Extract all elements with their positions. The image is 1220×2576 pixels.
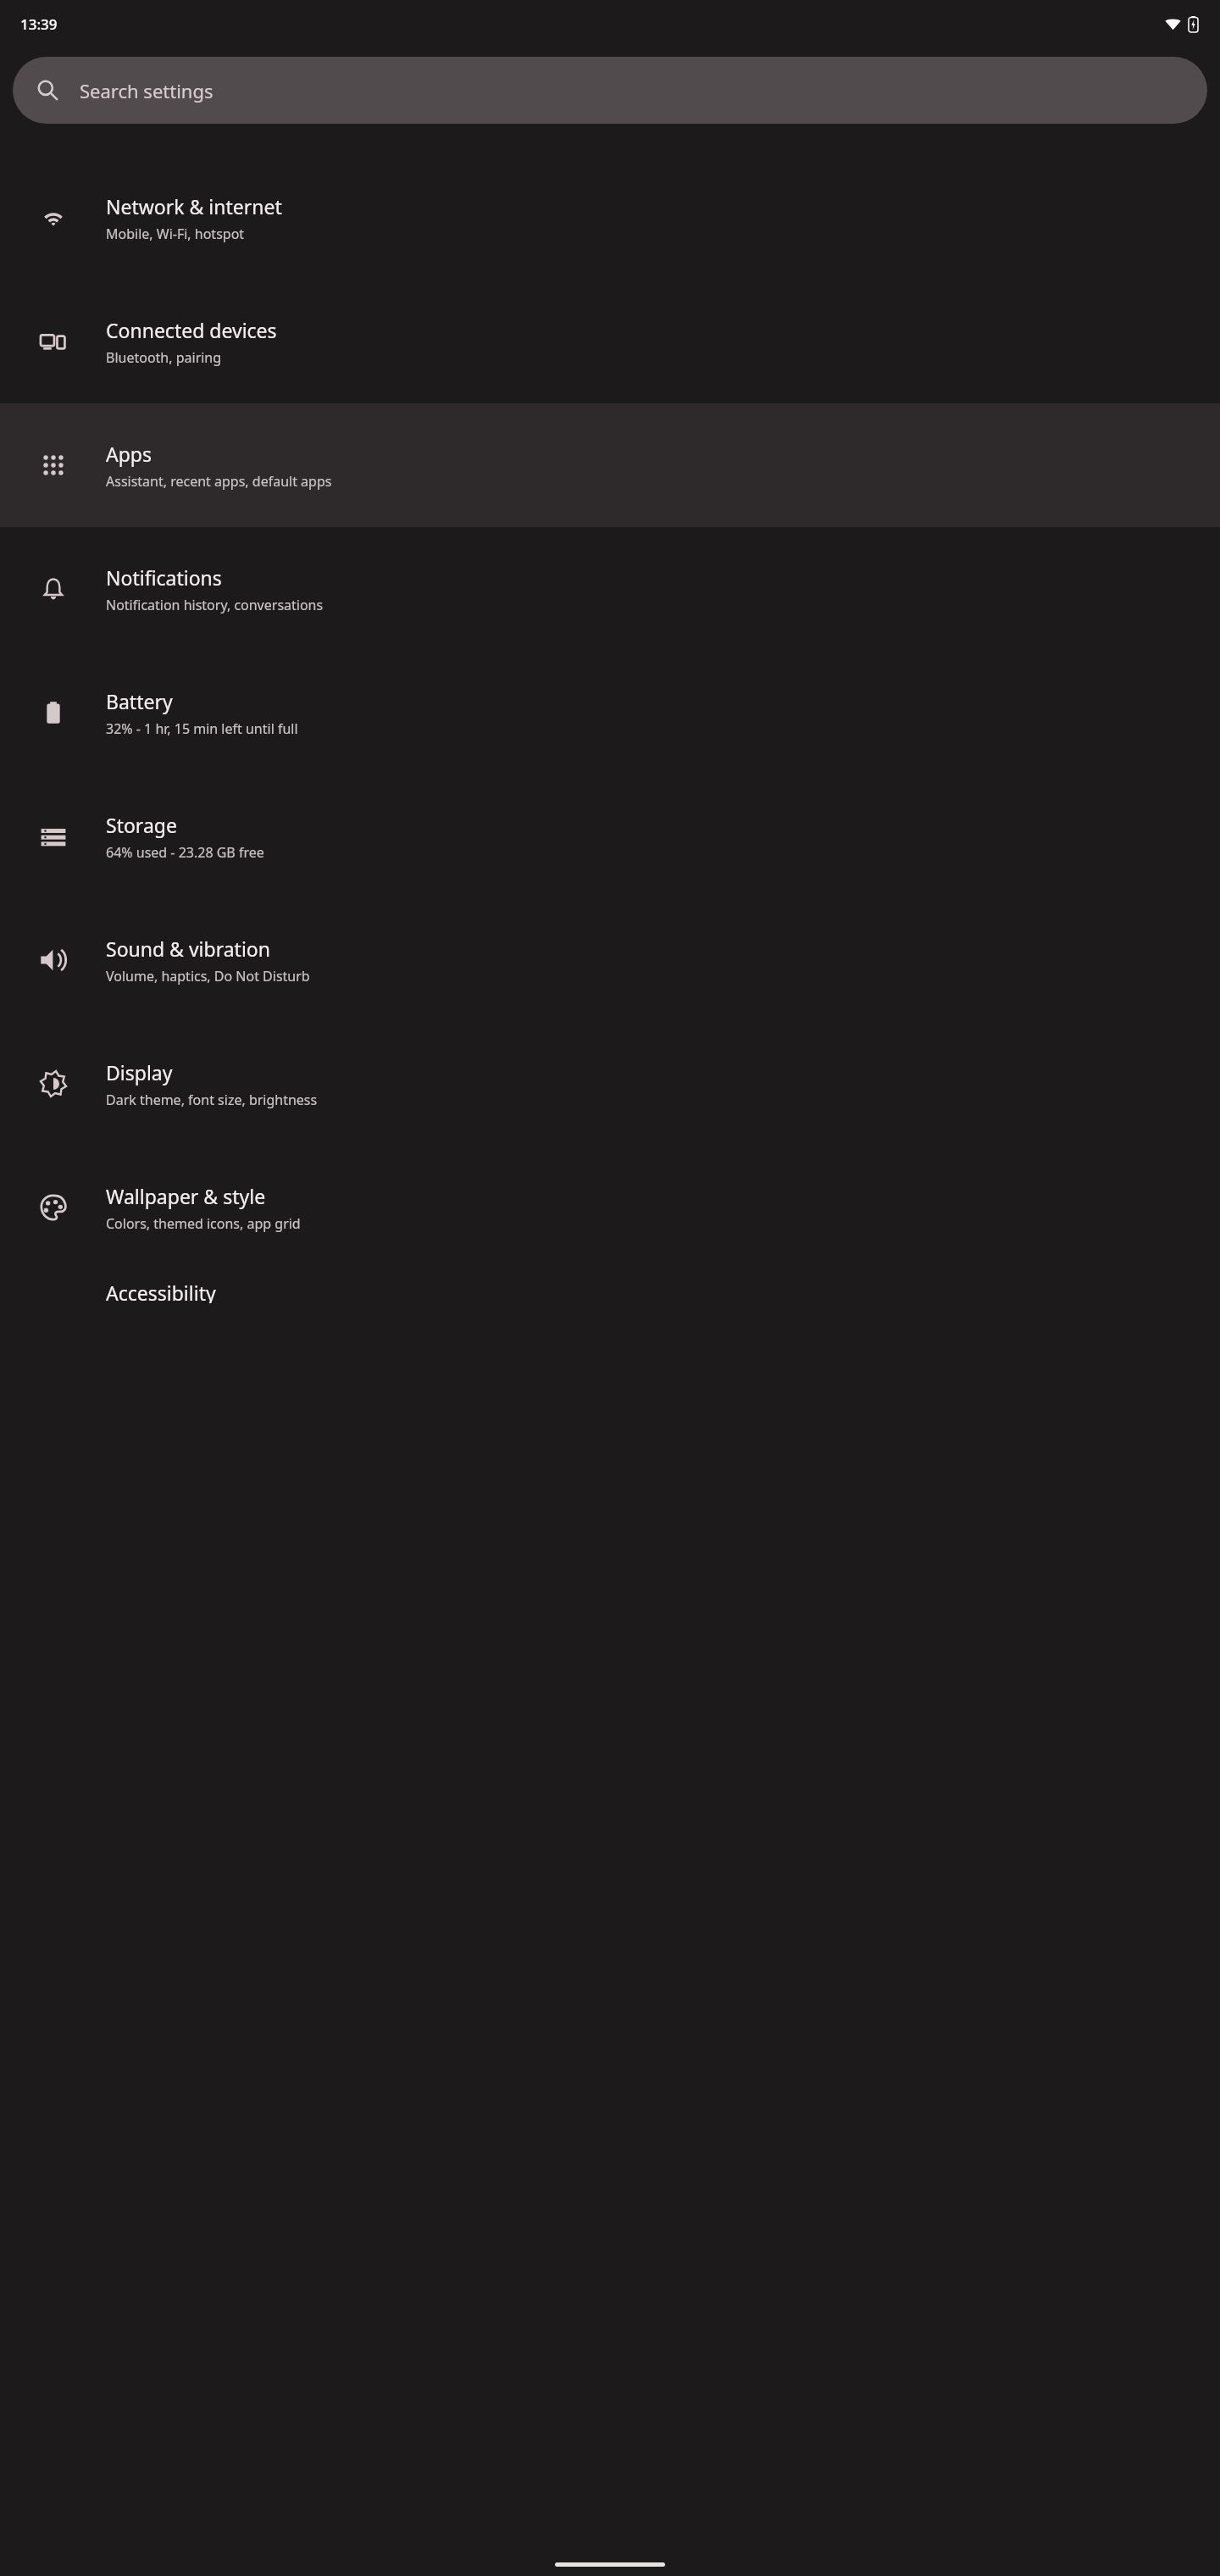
staticText: Accessibility: [106, 1280, 216, 1303]
staticText: Colors, themed icons, app grid: [106, 1214, 301, 1233]
staticText: Assistant, recent apps, default apps: [106, 472, 332, 491]
staticText: Connected devices: [106, 317, 277, 343]
button[interactable]: Storage: [0, 774, 1220, 898]
staticText: Notifications: [106, 564, 222, 591]
staticText: Sound & vibration: [106, 935, 270, 962]
button[interactable]: Network & internet: [0, 156, 1220, 280]
staticText: Apps: [106, 441, 152, 467]
button[interactable]: Search settings: [13, 57, 1207, 124]
other: Display: [40, 1070, 67, 1097]
other: Storage: [40, 823, 67, 850]
staticText: Mobile, Wi-Fi, hotspot: [106, 225, 245, 243]
other: Network & internet: [40, 204, 67, 231]
staticText: Battery: [106, 688, 173, 714]
staticText: Display: [106, 1059, 173, 1085]
staticText: Bluetooth, pairing: [106, 348, 222, 367]
staticText: 64% used - 23.28 GB free: [106, 843, 264, 862]
other: Notifications: [40, 575, 67, 602]
staticText: Dark theme, font size, brightness: [106, 1091, 318, 1109]
staticText: 32% - 1 hr, 15 min left until full: [106, 719, 298, 738]
staticText: Volume, haptics, Do Not Disturb: [106, 967, 310, 985]
other: Sound & vibration: [40, 947, 67, 974]
other: Wallpaper & style: [40, 1194, 67, 1221]
button[interactable]: Accessibility: [0, 1269, 1220, 1303]
staticText: Network & internet: [106, 193, 282, 219]
staticText: Search settings: [80, 78, 213, 103]
button[interactable]: Battery: [0, 651, 1220, 774]
button[interactable]: Notifications: [0, 527, 1220, 651]
button[interactable]: Wallpaper & style: [0, 1146, 1220, 1269]
staticText: 13:39: [20, 14, 58, 34]
staticText: Storage: [106, 812, 177, 838]
button[interactable]: Connected devices: [0, 280, 1220, 403]
staticText: Notification history, conversations: [106, 596, 324, 614]
other: Connected devices: [40, 328, 67, 355]
button[interactable]: Sound & vibration: [0, 898, 1220, 1022]
other: Apps: [40, 452, 67, 479]
other: Battery: [40, 699, 67, 726]
button[interactable]: Apps: [0, 403, 1220, 527]
staticText: Wallpaper & style: [106, 1183, 266, 1209]
button[interactable]: Display: [0, 1022, 1220, 1146]
